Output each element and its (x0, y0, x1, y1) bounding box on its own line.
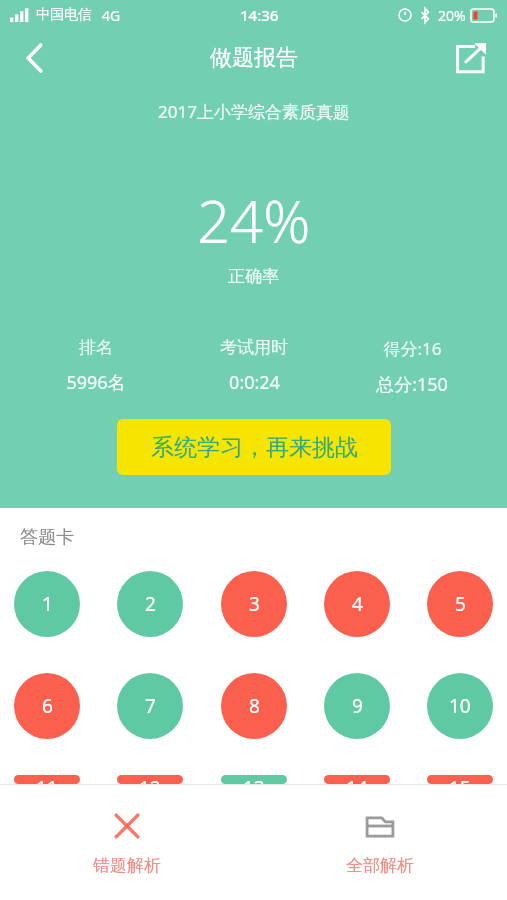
button[interactable]: 全部解析 (253, 785, 507, 900)
staticText: 排名 (79, 337, 113, 358)
button[interactable]: 错题解析 (0, 785, 253, 900)
button[interactable]: 11 (14, 775, 80, 784)
button[interactable]: 4 (324, 571, 390, 637)
button[interactable]: 13 (221, 775, 287, 784)
staticText: 11 (36, 775, 58, 784)
staticText: 2017上小学综合素质真题 (158, 100, 350, 123)
staticText: 答题卡 (20, 526, 74, 549)
button[interactable]: 8 (221, 673, 287, 739)
button[interactable]: Share (445, 32, 497, 84)
staticText: 0:0:24 (229, 370, 280, 395)
button[interactable]: 7 (117, 673, 183, 739)
staticText: 24% (197, 181, 311, 260)
staticText: 9 (352, 693, 363, 719)
staticText: 4G (102, 6, 121, 25)
button[interactable]: 1 (14, 571, 80, 637)
button[interactable]: 14 (324, 775, 390, 784)
staticText: 系统学习，再来挑战 (151, 433, 358, 462)
staticText: 总分:150 (376, 372, 448, 397)
button[interactable]: 10 (427, 673, 493, 739)
staticText: 做题报告 (210, 44, 298, 72)
staticText: 考试用时 (220, 337, 288, 358)
staticText: 15 (449, 775, 471, 784)
staticText: 错题解析 (93, 855, 161, 876)
button[interactable]: 系统学习，再来挑战 (117, 419, 391, 475)
button[interactable]: 3 (221, 571, 287, 637)
staticText: 1 (42, 591, 53, 617)
button[interactable]: 6 (14, 673, 80, 739)
staticText: 2 (145, 591, 156, 617)
button[interactable]: 9 (324, 673, 390, 739)
staticText: 13 (243, 775, 265, 784)
button[interactable]: 5 (427, 571, 493, 637)
staticText: 正确率 (228, 266, 279, 287)
staticText: 5 (455, 591, 466, 617)
staticText: 6 (42, 693, 53, 719)
button[interactable]: 15 (427, 775, 493, 784)
staticText: 中国电信 (36, 6, 92, 24)
staticText: 4 (352, 591, 363, 617)
staticText: 10 (449, 693, 471, 719)
button[interactable]: Back (8, 32, 60, 84)
staticText: 12 (139, 775, 161, 784)
staticText: 5996名 (66, 370, 126, 395)
button[interactable]: 12 (117, 775, 183, 784)
button[interactable]: 2 (117, 571, 183, 637)
staticText: 20% (438, 6, 466, 25)
staticText: 全部解析 (346, 855, 414, 876)
staticText: 8 (249, 693, 260, 719)
staticText: 3 (249, 591, 260, 617)
staticText: 得分:16 (383, 337, 442, 360)
staticText: 14:36 (240, 5, 279, 25)
staticText: 7 (145, 693, 156, 719)
staticText: 14 (346, 775, 368, 784)
